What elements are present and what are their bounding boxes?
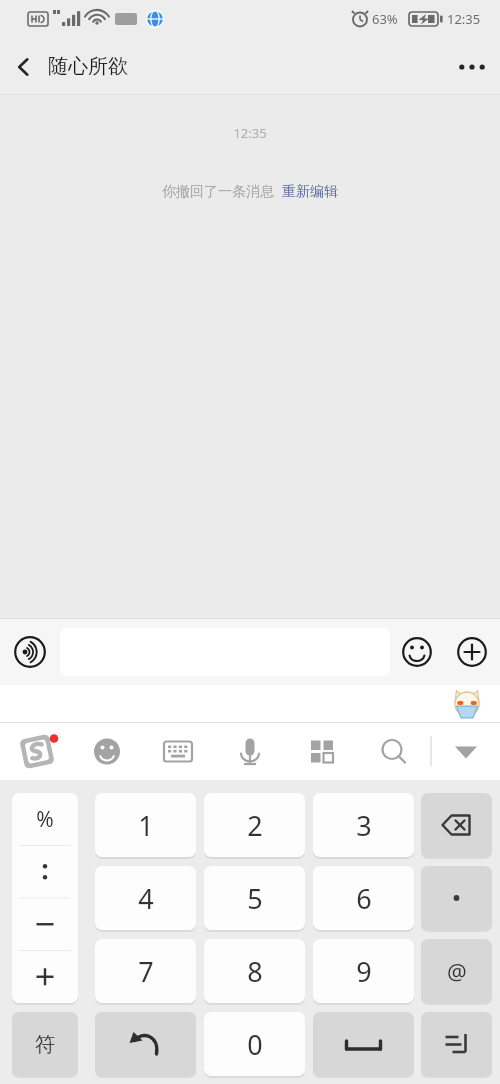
- button[interactable]: More functions: [444, 619, 500, 685]
- staticText: 63%: [372, 10, 398, 28]
- button[interactable]: Emoji: [390, 619, 444, 685]
- button[interactable]: Keyboard layout: [144, 723, 214, 780]
- staticText: 9: [356, 953, 372, 990]
- button[interactable]: [313, 939, 414, 1003]
- staticText: 重新编辑: [282, 183, 338, 201]
- button[interactable]: [313, 793, 414, 857]
- button[interactable]: [421, 939, 492, 1003]
- staticText: 你撤回了一条消息: [162, 183, 274, 201]
- button[interactable]: Hide keyboard: [432, 723, 500, 780]
- staticText: 12:35: [0, 124, 500, 142]
- button[interactable]: Search: [360, 723, 432, 780]
- button[interactable]: [204, 793, 305, 857]
- button[interactable]: Enter: [421, 1012, 492, 1076]
- button[interactable]: [95, 793, 196, 857]
- staticText: 5: [247, 880, 263, 917]
- staticText: @: [447, 956, 467, 986]
- staticText: 随心所欲: [48, 54, 128, 79]
- button[interactable]: [204, 939, 305, 1003]
- button[interactable]: Emoji panel: [74, 723, 144, 780]
- staticText: 符: [35, 1032, 55, 1057]
- staticText: 1: [138, 807, 154, 844]
- button[interactable]: [204, 1012, 305, 1076]
- button[interactable]: Symbols: [12, 793, 78, 1003]
- button[interactable]: Voice input: [0, 619, 60, 685]
- staticText: 2: [247, 807, 263, 844]
- staticText: 12:35: [447, 10, 481, 28]
- button[interactable]: Space: [313, 1012, 414, 1076]
- button[interactable]: Undo: [95, 1012, 196, 1076]
- staticText: 0: [247, 1026, 263, 1063]
- button[interactable]: [313, 866, 414, 930]
- staticText: %: [36, 805, 54, 834]
- button[interactable]: Period: [421, 866, 492, 930]
- button[interactable]: [95, 939, 196, 1003]
- button[interactable]: Sogou input: [0, 723, 74, 780]
- button[interactable]: Tools panel: [288, 723, 360, 780]
- button[interactable]: 重新编辑: [282, 183, 338, 201]
- staticText: 3: [356, 807, 372, 844]
- button[interactable]: More options: [444, 38, 500, 95]
- button[interactable]: Backspace: [421, 793, 492, 857]
- staticText: 7: [138, 953, 154, 990]
- staticText: 4: [138, 880, 154, 917]
- button[interactable]: Voice input: [214, 723, 288, 780]
- button[interactable]: [12, 1012, 78, 1076]
- button[interactable]: [204, 866, 305, 930]
- button[interactable]: Back: [0, 38, 48, 95]
- staticText: 8: [247, 953, 263, 990]
- button[interactable]: Sticker suggestion: [452, 689, 482, 719]
- button[interactable]: [95, 866, 196, 930]
- staticText: 6: [356, 880, 372, 917]
